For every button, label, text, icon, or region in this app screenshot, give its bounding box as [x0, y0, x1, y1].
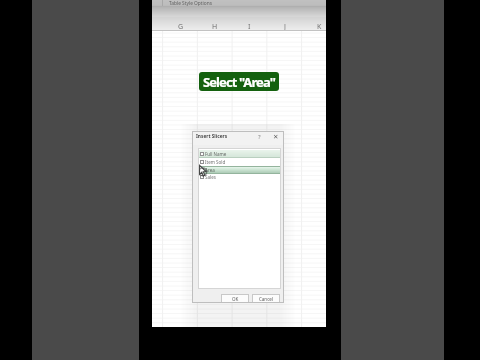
- staticText: H: [212, 22, 218, 32]
- button[interactable]: OK: [221, 294, 249, 303]
- staticText: Sales: [205, 174, 216, 180]
- staticText: J: [284, 22, 286, 32]
- button[interactable]: Item Sold: [198, 158, 281, 166]
- staticText: Select "Area": [203, 73, 275, 91]
- staticText: G: [178, 22, 184, 32]
- button[interactable]: Close: [270, 131, 282, 143]
- staticText: ✕: [273, 133, 279, 141]
- staticText: ?: [258, 133, 261, 141]
- button[interactable]: Help: [253, 131, 265, 143]
- staticText: OK: [232, 296, 239, 302]
- staticText: Item Sold: [205, 159, 226, 165]
- button[interactable]: Sales: [198, 173, 281, 181]
- button[interactable]: Full Name: [198, 150, 281, 158]
- staticText: Table Style Options: [169, 0, 212, 7]
- button[interactable]: Area: [198, 166, 281, 174]
- staticText: Full Name: [205, 151, 227, 157]
- staticText: Area: [205, 167, 215, 173]
- button[interactable]: Select "Area": [199, 72, 279, 91]
- staticText: Cancel: [259, 296, 274, 302]
- button[interactable]: Cancel: [252, 294, 280, 303]
- staticText: K: [317, 22, 322, 32]
- staticText: Insert Slicers: [196, 133, 228, 140]
- staticText: I: [248, 22, 251, 32]
